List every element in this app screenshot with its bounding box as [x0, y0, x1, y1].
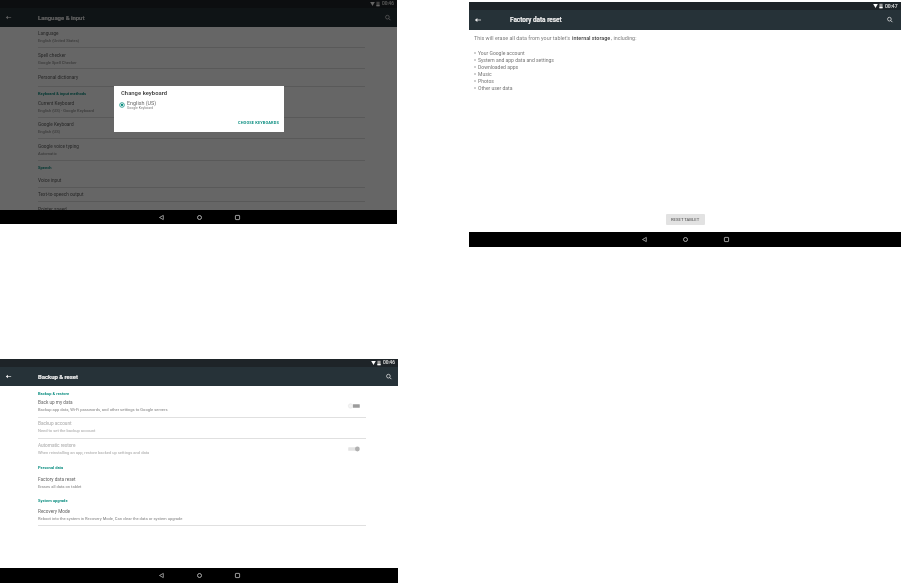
staticText: Backup account — [38, 421, 72, 427]
button[interactable]: Search — [882, 12, 898, 28]
button[interactable]: Text-to-speech output — [0, 192, 397, 198]
staticText: Factory data reset — [38, 477, 76, 483]
staticText: 00:46 — [382, 1, 394, 7]
staticText: Google Keyboard — [38, 122, 74, 128]
staticText: This will erase all data from your table… — [474, 35, 572, 41]
button[interactable]: Automatic restore — [0, 443, 398, 455]
button[interactable]: Current Keyboard — [0, 101, 397, 113]
button[interactable]: Factory data reset — [0, 477, 398, 489]
button[interactable]: Spell checker — [0, 53, 397, 65]
other: Selected — [119, 102, 125, 108]
staticText: Music — [478, 71, 492, 77]
button[interactable]: Home — [678, 232, 693, 247]
staticText: Language & input — [38, 14, 85, 21]
staticText: Automatic restore — [38, 443, 76, 449]
staticText: Language — [38, 31, 59, 37]
button[interactable]: RESET TABLET — [666, 214, 705, 225]
button[interactable]: Back — [0, 367, 17, 386]
button[interactable]: Back — [154, 210, 168, 224]
staticText: 00:46 — [383, 360, 395, 366]
button[interactable]: CHOOSE KEYBOARDS — [238, 120, 284, 132]
staticText: Downloaded apps — [478, 64, 519, 70]
staticText: Other user data — [478, 85, 513, 91]
button[interactable]: Back — [0, 8, 17, 27]
button[interactable]: Home — [192, 210, 206, 224]
button[interactable]: On — [348, 445, 360, 453]
button[interactable]: Backup account — [0, 421, 398, 433]
button[interactable]: Back — [469, 10, 487, 30]
button[interactable]: Selected — [114, 100, 284, 110]
button[interactable]: Off — [348, 402, 360, 410]
button[interactable]: Back — [154, 568, 169, 583]
staticText: Your Google account — [478, 50, 525, 56]
staticText: English (United States) — [38, 38, 80, 43]
staticText: System and app data and settings — [478, 57, 554, 63]
button[interactable]: Google Keyboard — [0, 122, 397, 134]
staticText: internal storage — [572, 35, 611, 41]
button[interactable]: Search — [381, 369, 396, 384]
button[interactable]: Google voice typing — [0, 144, 397, 156]
button[interactable]: Recents — [230, 210, 244, 224]
staticText: Back up my data — [38, 400, 73, 406]
staticText: Text-to-speech output — [38, 192, 84, 198]
button[interactable]: Back up my data — [0, 400, 398, 412]
staticText: Google Keyboard — [127, 106, 154, 110]
staticText: Photos — [478, 78, 494, 84]
staticText: Need to set the backup account — [38, 428, 96, 433]
staticText: RESET TABLET — [671, 217, 700, 222]
staticText: Automatic — [38, 151, 57, 156]
staticText: System upgrade — [38, 498, 68, 503]
staticText: Voice input — [38, 178, 62, 184]
staticText: Speech — [38, 165, 52, 170]
staticText: Backup & restore — [38, 391, 70, 396]
staticText: CHOOSE KEYBOARDS — [238, 120, 279, 125]
button[interactable]: Language — [0, 31, 397, 43]
button[interactable]: Recents — [719, 232, 734, 247]
staticText: Personal dictionary — [38, 75, 79, 81]
staticText: Erases all data on tablet — [38, 484, 82, 489]
button[interactable]: Recovery Mode — [0, 509, 398, 521]
staticText: 00:47 — [885, 3, 898, 9]
staticText: Keyboard & input methods — [38, 91, 87, 96]
button[interactable]: Recents — [230, 568, 245, 583]
button[interactable]: Search — [380, 10, 395, 25]
button[interactable]: Personal dictionary — [0, 75, 397, 81]
staticText: Factory data reset — [510, 16, 562, 24]
staticText: Pointer speed — [38, 207, 67, 213]
staticText: Backup app data, Wi-Fi passwords, and ot… — [38, 407, 168, 412]
staticText: Google voice typing — [38, 144, 79, 150]
button[interactable]: Home — [192, 568, 207, 583]
staticText: , including: — [611, 35, 637, 41]
staticText: When reinstalling an app, restore backed… — [38, 450, 150, 455]
staticText: English (US) — [127, 100, 157, 106]
staticText: Google Spell Checker — [38, 60, 77, 65]
staticText: English (US) — [38, 129, 61, 134]
staticText: Reboot into the system in Recovery Mode,… — [38, 516, 183, 521]
button[interactable]: Voice input — [0, 178, 397, 184]
button[interactable]: Pointer speed — [0, 207, 397, 213]
staticText: Spell checker — [38, 53, 66, 59]
staticText: Backup & reset — [38, 373, 79, 380]
staticText: Personal data — [38, 465, 64, 470]
button[interactable]: Back — [637, 232, 652, 247]
staticText: Recovery Mode — [38, 509, 71, 515]
staticText: Current Keyboard — [38, 101, 75, 107]
staticText: Change keyboard — [121, 90, 168, 97]
staticText: English (US) - Google Keyboard — [38, 108, 95, 113]
